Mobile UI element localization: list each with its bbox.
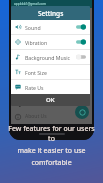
- button[interactable]: On: [76, 39, 86, 45]
- staticText: Rate Us: [25, 84, 86, 91]
- staticText: Few features for our users to: [6, 124, 97, 144]
- staticText: Vibration: [25, 39, 76, 46]
- button[interactable]: Font Size: [11, 65, 90, 79]
- staticText: Font Size: [25, 69, 86, 76]
- staticText: make it easier to use: [17, 146, 86, 156]
- button[interactable]: About Us: [11, 110, 92, 123]
- button[interactable]: OK: [11, 94, 90, 106]
- staticText: Background Music: [25, 54, 76, 61]
- button[interactable]: Share App: [11, 97, 92, 110]
- staticText: appbbb1@gmail.com: [14, 2, 46, 6]
- button[interactable]: Add: [75, 105, 89, 119]
- button[interactable]: On: [76, 24, 86, 30]
- staticText: OK: [46, 96, 55, 104]
- staticText: Settings: [38, 9, 64, 18]
- button[interactable]: Vibration: [11, 35, 90, 49]
- staticText: Share App: [25, 100, 50, 107]
- button[interactable]: Off: [76, 54, 86, 60]
- staticText: comfortable: [31, 158, 72, 168]
- button[interactable]: Background Music: [11, 50, 90, 64]
- staticText: Sound: [25, 24, 76, 31]
- staticText: About Us: [25, 113, 47, 120]
- button[interactable]: Rate Us: [11, 80, 90, 94]
- button[interactable]: Sound: [11, 20, 90, 34]
